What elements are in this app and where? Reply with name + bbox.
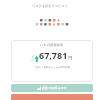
button[interactable]: つみたて設定を変更する — [11, 94, 93, 100]
staticText: リスクを抑えてコツコツ — [32, 4, 68, 8]
button[interactable]: 資産の推移を見る — [11, 84, 93, 92]
staticText: 67,781 — [39, 49, 68, 61]
staticText: いまの資産状況 — [40, 43, 64, 47]
button[interactable]: いまの資産状況 — [11, 40, 93, 82]
staticText: 資産の推移を見る — [42, 86, 67, 90]
staticText: 円 — [68, 55, 73, 60]
staticText: つみたて金額より 1,781円の利益 — [34, 65, 70, 68]
